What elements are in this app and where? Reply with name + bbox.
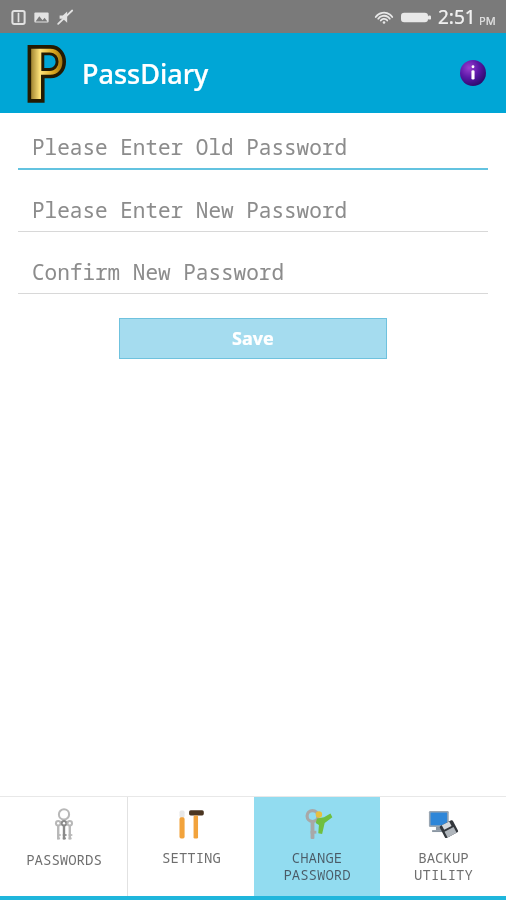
button[interactable]: SETTING: [128, 797, 254, 896]
staticText: PassDiary: [82, 55, 209, 92]
button[interactable]: CHANGE PASSWORD: [254, 797, 380, 896]
staticText: PM: [479, 13, 496, 28]
staticText: Confirm New Password: [32, 258, 284, 287]
staticText: PASSWORDS: [26, 850, 102, 869]
button[interactable]: BACKUP UTILITY: [380, 797, 506, 896]
staticText: Please Enter New Password: [32, 196, 347, 225]
button[interactable]: Please Enter Old Password: [18, 133, 488, 170]
staticText: Please Enter Old Password: [32, 133, 347, 162]
staticText: BACKUP UTILITY: [414, 848, 473, 884]
button[interactable]: Please Enter New Password: [18, 196, 488, 232]
button[interactable]: Confirm New Password: [18, 258, 488, 294]
staticText: 2:51: [438, 4, 476, 30]
staticText: Save: [232, 326, 274, 351]
staticText: CHANGE PASSWORD: [283, 848, 351, 884]
button[interactable]: Info: [456, 56, 490, 90]
button[interactable]: PASSWORDS: [0, 797, 127, 896]
staticText: SETTING: [162, 848, 221, 867]
button[interactable]: Save: [119, 318, 387, 359]
